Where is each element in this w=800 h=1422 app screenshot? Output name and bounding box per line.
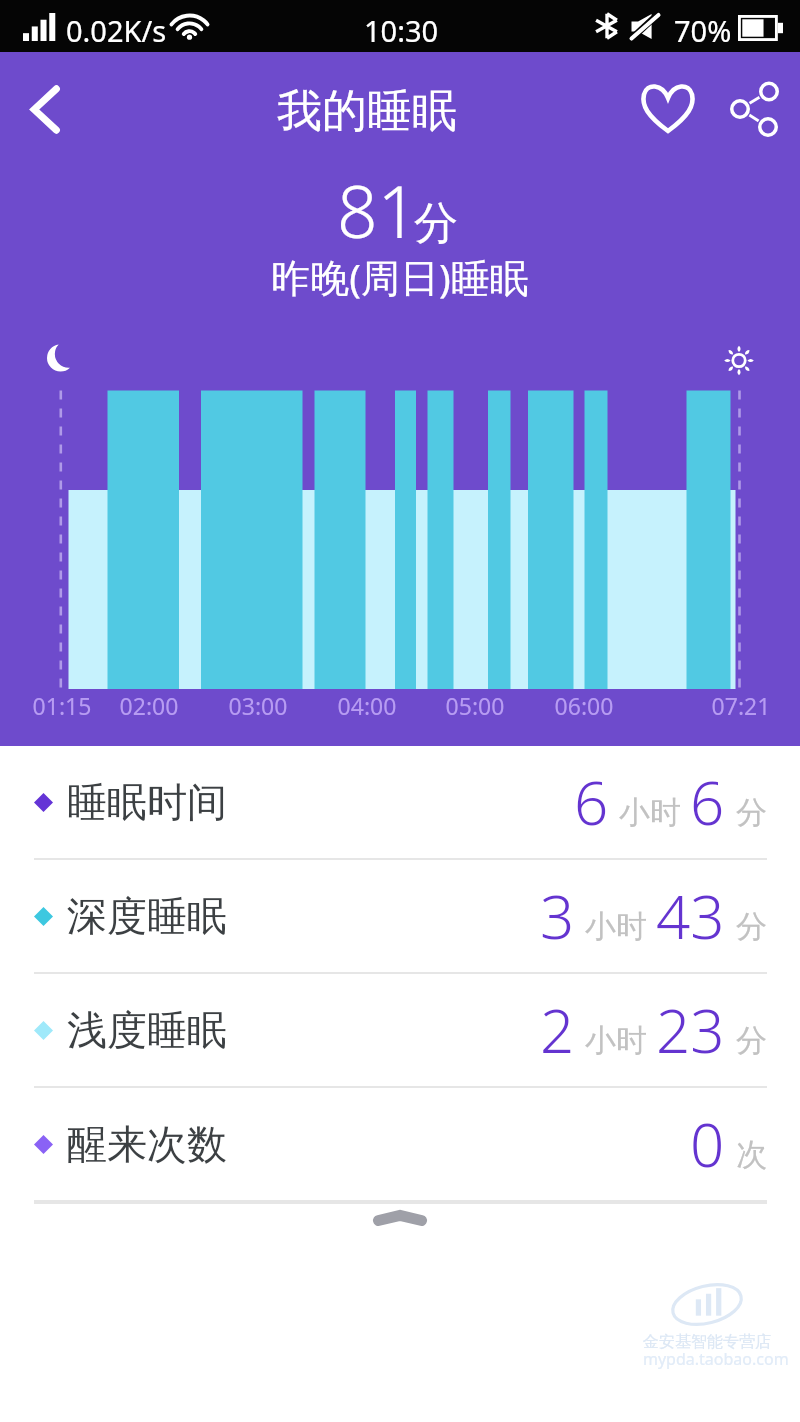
button[interactable]: 睡眠时间: [0, 746, 800, 858]
staticText: 醒来次数: [67, 1119, 227, 1169]
staticText: 04:00: [327, 690, 407, 721]
button[interactable]: Back: [0, 52, 82, 146]
staticText: mypda.taobao.com: [643, 1348, 789, 1370]
button[interactable]: 醒来次数: [0, 1088, 800, 1200]
staticText: 金安基智能专营店: [643, 1332, 771, 1352]
staticText: 我的睡眠: [277, 83, 457, 140]
staticText: 70%: [674, 11, 732, 50]
staticText: 浅度睡眠: [67, 1005, 227, 1055]
staticText: 0: [690, 1103, 725, 1185]
staticText: 小时: [585, 1021, 647, 1060]
staticText: 05:00: [435, 690, 515, 721]
staticText: 深度睡眠: [67, 891, 227, 941]
button[interactable]: Collapse: [0, 1204, 800, 1274]
staticText: 6: [690, 761, 725, 843]
staticText: 3: [540, 875, 575, 957]
staticText: 07:21: [701, 690, 781, 721]
staticText: 03:00: [218, 690, 298, 721]
staticText: 次: [736, 1135, 767, 1174]
staticText: 23: [656, 989, 725, 1071]
staticText: 10:30: [364, 11, 439, 50]
staticText: 01:15: [22, 690, 102, 721]
staticText: 小时: [585, 907, 647, 946]
button[interactable]: Favourite: [632, 52, 704, 146]
staticText: 2: [540, 989, 575, 1071]
staticText: 81: [337, 162, 419, 259]
staticText: 06:00: [544, 690, 624, 721]
staticText: 分: [736, 907, 767, 946]
staticText: 分: [736, 1021, 767, 1060]
staticText: 43: [656, 875, 725, 957]
button[interactable]: Share: [722, 52, 792, 146]
staticText: 分: [736, 793, 767, 832]
button[interactable]: 浅度睡眠: [0, 974, 800, 1086]
staticText: 睡眠时间: [67, 777, 227, 827]
staticText: 分: [414, 196, 458, 251]
staticText: 6: [574, 761, 609, 843]
button[interactable]: 深度睡眠: [0, 860, 800, 972]
staticText: 小时: [619, 793, 681, 832]
staticText: 昨晚(周日)睡眠: [0, 250, 800, 303]
staticText: 02:00: [109, 690, 189, 721]
staticText: 0.02K/s: [66, 11, 167, 50]
